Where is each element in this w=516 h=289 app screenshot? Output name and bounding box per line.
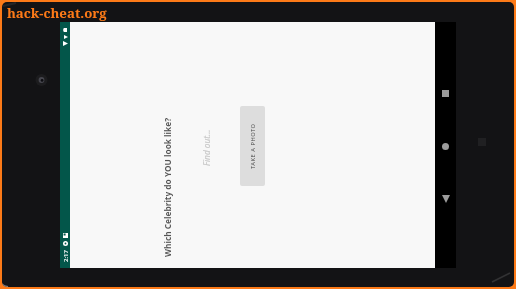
button[interactable]: TAKE A PHOTO — [240, 106, 265, 186]
staticText: hack-cheat.org — [7, 4, 107, 22]
staticText: Find out... — [201, 129, 212, 166]
button[interactable]: Back — [435, 182, 456, 216]
button[interactable]: Recent apps — [435, 77, 456, 111]
staticText: TAKE A PHOTO — [249, 123, 257, 169]
staticText: Which Celebrity do YOU look like? — [162, 117, 173, 257]
button[interactable]: Home — [435, 130, 456, 164]
staticText: 2:17 — [62, 250, 70, 262]
